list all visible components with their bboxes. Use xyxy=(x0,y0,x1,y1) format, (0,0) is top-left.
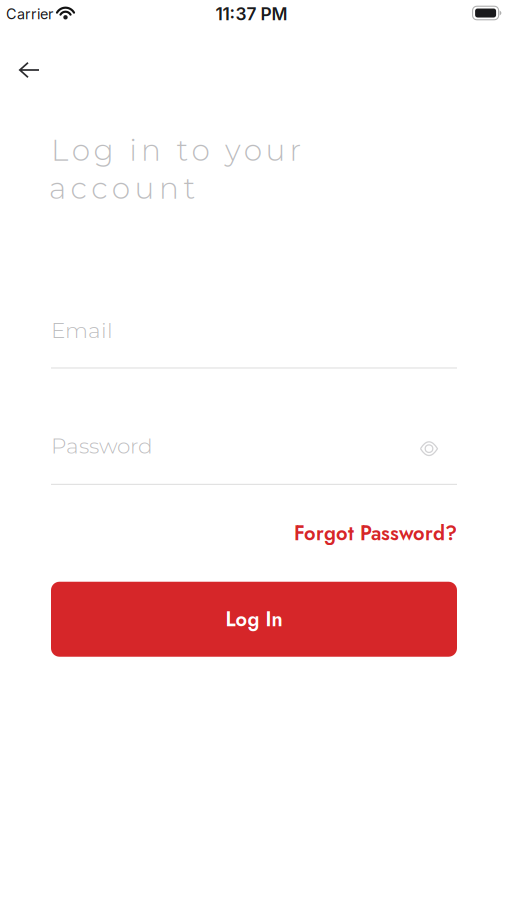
staticText: Log In xyxy=(225,605,282,634)
button[interactable]: Back xyxy=(0,28,39,78)
staticText: account xyxy=(49,170,208,206)
staticText: Password xyxy=(51,432,153,459)
staticText: Log in to your xyxy=(51,132,313,168)
button[interactable]: Show password xyxy=(420,439,438,453)
staticText: 11:37 PM xyxy=(215,3,287,24)
button[interactable]: Log In xyxy=(51,582,457,657)
staticText: Email xyxy=(51,317,113,343)
staticText: Carrier xyxy=(6,5,53,23)
button[interactable]: Password xyxy=(51,432,457,485)
button[interactable]: Forgot Password? xyxy=(294,519,457,548)
button[interactable]: Email xyxy=(51,317,457,368)
staticText: Forgot Password? xyxy=(294,519,457,548)
